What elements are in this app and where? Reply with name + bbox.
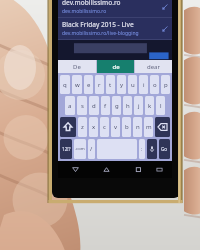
button[interactable]: l bbox=[156, 96, 165, 115]
button[interactable]: s bbox=[77, 96, 87, 115]
button[interactable]: y bbox=[117, 75, 126, 94]
staticText: g bbox=[115, 102, 119, 110]
staticText: m bbox=[146, 123, 152, 131]
button[interactable]: / bbox=[88, 139, 95, 159]
staticText: Go bbox=[161, 146, 168, 152]
staticText: j bbox=[138, 102, 140, 110]
staticText: u bbox=[131, 81, 135, 89]
staticText: n bbox=[136, 123, 140, 131]
button[interactable]: u bbox=[128, 75, 137, 94]
staticText: b bbox=[125, 123, 129, 131]
staticText: y bbox=[120, 81, 124, 89]
button[interactable]: Recents bbox=[130, 161, 146, 178]
button[interactable]: Backspace bbox=[155, 117, 170, 137]
button[interactable]: Black Friday 2015 - Live Blogging (reduc bbox=[58, 18, 172, 39]
button[interactable]: m bbox=[144, 117, 153, 137]
button[interactable]: p bbox=[161, 75, 170, 94]
staticText: a bbox=[68, 102, 72, 110]
button[interactable]: dev.mobilissimo.ro bbox=[58, 0, 172, 17]
staticText: dev.mobilissimo.ro bbox=[62, 8, 107, 15]
staticText: e bbox=[87, 81, 91, 89]
button[interactable]: Back bbox=[68, 161, 83, 178]
button[interactable]: dear bbox=[135, 60, 172, 73]
staticText: r bbox=[98, 81, 101, 89]
button[interactable]: x bbox=[89, 117, 98, 137]
staticText: de bbox=[112, 63, 120, 71]
staticText: : bbox=[141, 146, 143, 152]
button[interactable]: n bbox=[133, 117, 142, 137]
staticText: z bbox=[81, 123, 84, 131]
button[interactable]: Go bbox=[159, 139, 170, 159]
staticText: f bbox=[104, 102, 107, 110]
staticText: dear bbox=[147, 63, 160, 71]
button[interactable]: z bbox=[78, 117, 87, 137]
staticText: d bbox=[92, 102, 96, 110]
button[interactable]: 12!? bbox=[60, 139, 72, 159]
staticText: .com bbox=[75, 146, 85, 152]
button[interactable]: Home bbox=[98, 161, 114, 178]
staticText: k bbox=[148, 102, 152, 110]
staticText: l bbox=[160, 102, 162, 110]
button[interactable]: Hide keyboard bbox=[151, 161, 167, 178]
button[interactable]: a bbox=[65, 96, 75, 115]
other: Insert suggestion bbox=[161, 25, 169, 33]
button[interactable]: d bbox=[89, 96, 99, 115]
staticText: h bbox=[126, 102, 130, 110]
staticText: w bbox=[75, 81, 80, 89]
staticText: dev.mobilissimo.ro/live-blogging bbox=[62, 30, 139, 37]
staticText: 12!? bbox=[62, 146, 71, 152]
button[interactable]: Shift bbox=[60, 117, 76, 137]
button[interactable]: b bbox=[122, 117, 131, 137]
button[interactable]: w bbox=[72, 75, 82, 94]
button[interactable]: q bbox=[60, 75, 70, 94]
staticText: s bbox=[81, 102, 84, 110]
button[interactable]: h bbox=[123, 96, 132, 115]
button[interactable]: De bbox=[58, 60, 96, 73]
button[interactable]: g bbox=[112, 96, 121, 115]
staticText: t bbox=[109, 81, 112, 89]
button[interactable]: o bbox=[150, 75, 159, 94]
staticText: q bbox=[63, 81, 67, 89]
button[interactable]: j bbox=[134, 96, 143, 115]
button[interactable]: k bbox=[145, 96, 154, 115]
button[interactable]: e bbox=[84, 75, 93, 94]
staticText: i bbox=[143, 81, 145, 89]
staticText: o bbox=[153, 81, 157, 89]
staticText: / bbox=[90, 145, 93, 153]
other: Insert suggestion bbox=[161, 3, 169, 11]
staticText: De bbox=[73, 63, 81, 71]
staticText: x bbox=[92, 123, 96, 131]
staticText: c bbox=[103, 123, 106, 131]
button[interactable]: Voice input bbox=[147, 139, 157, 159]
button[interactable]: r bbox=[95, 75, 104, 94]
button[interactable]: t bbox=[106, 75, 115, 94]
staticText: Black Friday 2015 - Live Blogging (reduc bbox=[62, 20, 161, 29]
button[interactable]: c bbox=[100, 117, 109, 137]
button[interactable]: .com bbox=[74, 139, 86, 159]
staticText: p bbox=[164, 81, 168, 89]
button[interactable]: : bbox=[139, 139, 145, 159]
button[interactable]: v bbox=[111, 117, 120, 137]
button[interactable]: de bbox=[97, 60, 134, 73]
staticText: dev.mobilissimo.ro bbox=[62, 0, 121, 7]
button[interactable]: i bbox=[139, 75, 148, 94]
button[interactable]: f bbox=[101, 96, 110, 115]
staticText: v bbox=[114, 123, 118, 131]
